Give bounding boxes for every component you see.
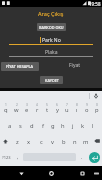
staticText: FİYAT HESAPLA — [6, 64, 34, 69]
staticText: 0 — [96, 103, 98, 107]
staticText: j — [72, 122, 74, 130]
button[interactable]: Home — [43, 166, 59, 180]
button[interactable]: 8 — [72, 101, 82, 117]
button[interactable]: j — [68, 117, 78, 133]
staticText: 2 — [16, 103, 18, 107]
button[interactable]: k — [78, 117, 88, 133]
staticText: d — [30, 122, 34, 130]
button[interactable]: KAYDET — [40, 76, 63, 84]
staticText: f — [42, 122, 44, 130]
staticText: l — [92, 122, 94, 130]
button[interactable]: c — [35, 133, 47, 149]
button[interactable]: Recents — [74, 166, 90, 180]
staticText: 6 — [56, 103, 58, 107]
button[interactable]: v — [47, 133, 58, 149]
staticText: b — [62, 138, 66, 146]
button[interactable]: 2 — [11, 101, 22, 117]
staticText: s — [19, 122, 22, 130]
button[interactable]: BARKOD OKU — [37, 23, 66, 31]
staticText: c — [40, 138, 43, 146]
button[interactable]: 4 — [32, 101, 42, 117]
button[interactable]: l — [88, 117, 98, 133]
staticText: 9 — [86, 103, 88, 107]
staticText: Park No — [42, 37, 61, 44]
button[interactable]: 1 — [0, 101, 11, 117]
staticText: , — [17, 154, 19, 161]
button[interactable]: x — [23, 133, 35, 149]
staticText: 3 — [26, 103, 28, 107]
staticText: a — [8, 122, 12, 130]
staticText: k — [81, 122, 85, 130]
button[interactable]: Park No — [9, 34, 93, 45]
staticText: 1 — [5, 103, 7, 107]
button[interactable]: FİYAT HESAPLA — [1, 62, 39, 71]
button[interactable]: z — [11, 133, 23, 149]
button[interactable]: 6 — [52, 101, 62, 117]
button[interactable]: 7 — [62, 101, 72, 117]
staticText: y — [56, 106, 59, 114]
staticText: 19:58 — [89, 1, 101, 7]
button[interactable]: Shift — [0, 133, 11, 149]
button[interactable]: d — [26, 117, 37, 133]
staticText: t — [46, 106, 49, 114]
button[interactable]: n — [69, 133, 80, 149]
button[interactable]: f — [37, 117, 48, 133]
button[interactable]: b — [58, 133, 69, 149]
button[interactable]: Enter — [87, 149, 102, 165]
staticText: Fiyat — [69, 62, 81, 69]
button[interactable]: 0 — [92, 101, 102, 117]
staticText: . — [81, 154, 83, 161]
staticText: g — [51, 122, 55, 130]
button[interactable]: 9 — [82, 101, 92, 117]
staticText: Plaka — [45, 49, 58, 56]
button[interactable]: Back — [13, 166, 29, 180]
staticText: u — [65, 106, 69, 114]
staticText: n — [73, 138, 77, 146]
staticText: r — [36, 106, 39, 114]
button[interactable]: m — [80, 133, 91, 149]
button[interactable]: Period — [76, 149, 87, 165]
button[interactable]: ?123 — [0, 149, 12, 165]
staticText: h — [61, 122, 65, 130]
staticText: x — [27, 138, 31, 146]
staticText: BARKOD OKU — [39, 25, 64, 30]
staticText: q — [4, 106, 8, 114]
button[interactable]: s — [15, 117, 26, 133]
staticText: v — [51, 138, 54, 146]
button[interactable]: h — [58, 117, 68, 133]
button[interactable]: 3 — [22, 101, 32, 117]
button[interactable]: Fiyat — [60, 61, 90, 70]
button[interactable]: 5 — [42, 101, 52, 117]
staticText: m — [83, 138, 89, 146]
staticText: KAYDET — [45, 78, 59, 83]
button[interactable]: Backspace — [91, 133, 102, 149]
staticText: 4 — [36, 103, 38, 107]
button[interactable]: a — [4, 117, 15, 133]
staticText: Araç Çıkış — [38, 10, 64, 17]
other: Keyboard active — [92, 169, 100, 177]
staticText: 5 — [46, 103, 48, 107]
staticText: 7 — [66, 103, 68, 107]
staticText: ı — [76, 106, 78, 114]
button[interactable]: Comma — [12, 149, 23, 165]
staticText: p — [95, 106, 99, 114]
button[interactable]: g — [48, 117, 58, 133]
staticText: ?123 — [2, 155, 11, 160]
staticText: w — [14, 106, 19, 114]
button[interactable]: Plaka — [9, 46, 93, 57]
staticText: o — [85, 106, 89, 114]
button[interactable]: Voice input — [90, 91, 102, 101]
staticText: 8 — [76, 103, 78, 107]
staticText: e — [25, 106, 29, 114]
staticText: z — [16, 138, 19, 146]
